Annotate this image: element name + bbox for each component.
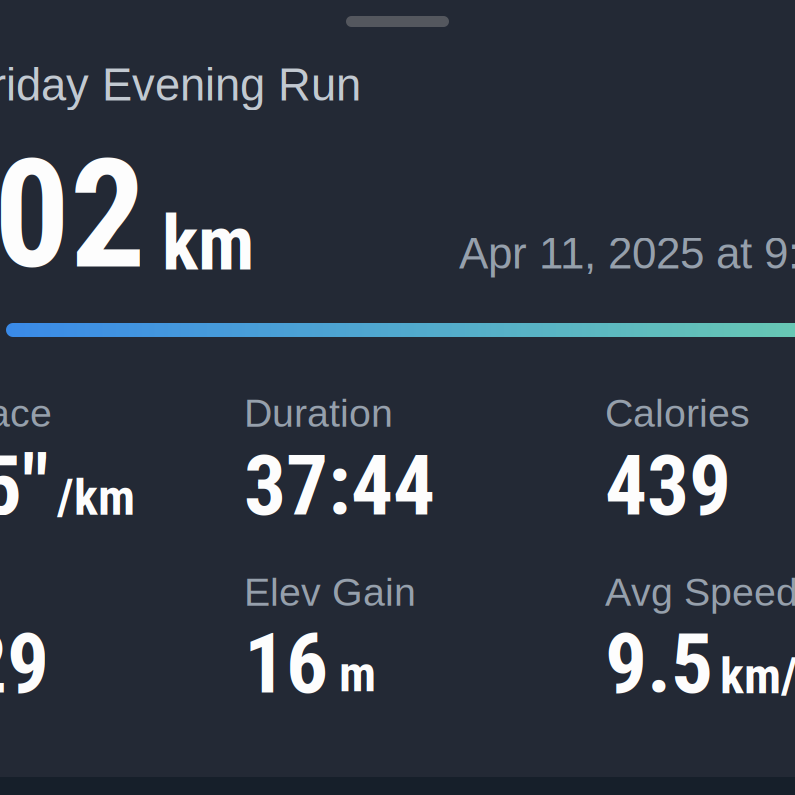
- staticText: 6.02: [0, 127, 146, 303]
- staticText: 6'15": [0, 437, 49, 535]
- staticText: km/h: [720, 647, 795, 706]
- staticText: 16: [244, 615, 328, 713]
- staticText: /km: [57, 468, 135, 527]
- button[interactable]: Avg Speed: [0, 0, 193, 98]
- button[interactable]: Calories: [0, 0, 145, 98]
- button[interactable]: Duration: [0, 0, 191, 98]
- staticText: Calories: [605, 391, 750, 435]
- staticText: 37:44: [244, 437, 435, 535]
- staticText: 5,429: [0, 615, 49, 713]
- button[interactable]: Steps: [0, 0, 188, 98]
- staticText: m: [339, 645, 376, 703]
- staticText: Duration: [244, 391, 393, 435]
- button[interactable]: Elev Gain: [0, 0, 172, 98]
- staticText: 9.5: [605, 615, 713, 713]
- staticText: km: [162, 199, 254, 288]
- staticText: 439: [605, 437, 731, 535]
- button[interactable]: Avg Pace: [0, 0, 169, 98]
- staticText: Avg Pace: [0, 391, 52, 435]
- staticText: Friday Evening Run: [0, 59, 361, 110]
- staticText: Apr 11, 2025 at 9:32 PM: [459, 229, 795, 278]
- staticText: Elev Gain: [244, 570, 416, 614]
- staticText: Avg Speed: [605, 570, 795, 614]
